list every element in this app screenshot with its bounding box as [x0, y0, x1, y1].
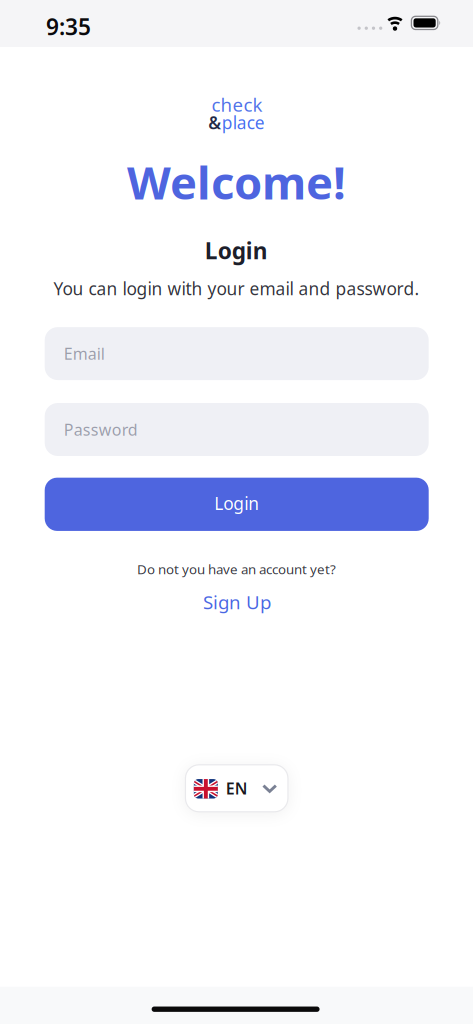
button[interactable]: Change language: [185, 765, 288, 812]
button[interactable]: Password: [45, 403, 429, 456]
staticText: Email: [64, 343, 105, 364]
staticText: &: [208, 111, 221, 134]
staticText: Do not you have an account yet?: [137, 560, 336, 578]
staticText: Sign Up: [203, 590, 271, 614]
staticText: Welcome!: [127, 152, 346, 212]
button[interactable]: Sign Up: [203, 590, 271, 614]
staticText: 9:35: [46, 11, 91, 41]
staticText: EN: [226, 778, 248, 799]
staticText: place: [222, 111, 265, 134]
button[interactable]: Login: [45, 478, 429, 531]
staticText: You can login with your email and passwo…: [53, 277, 419, 300]
staticText: Login: [214, 492, 259, 515]
staticText: Login: [205, 235, 268, 265]
staticText: check: [211, 92, 262, 117]
button[interactable]: Email: [45, 327, 429, 380]
staticText: Password: [64, 419, 138, 440]
